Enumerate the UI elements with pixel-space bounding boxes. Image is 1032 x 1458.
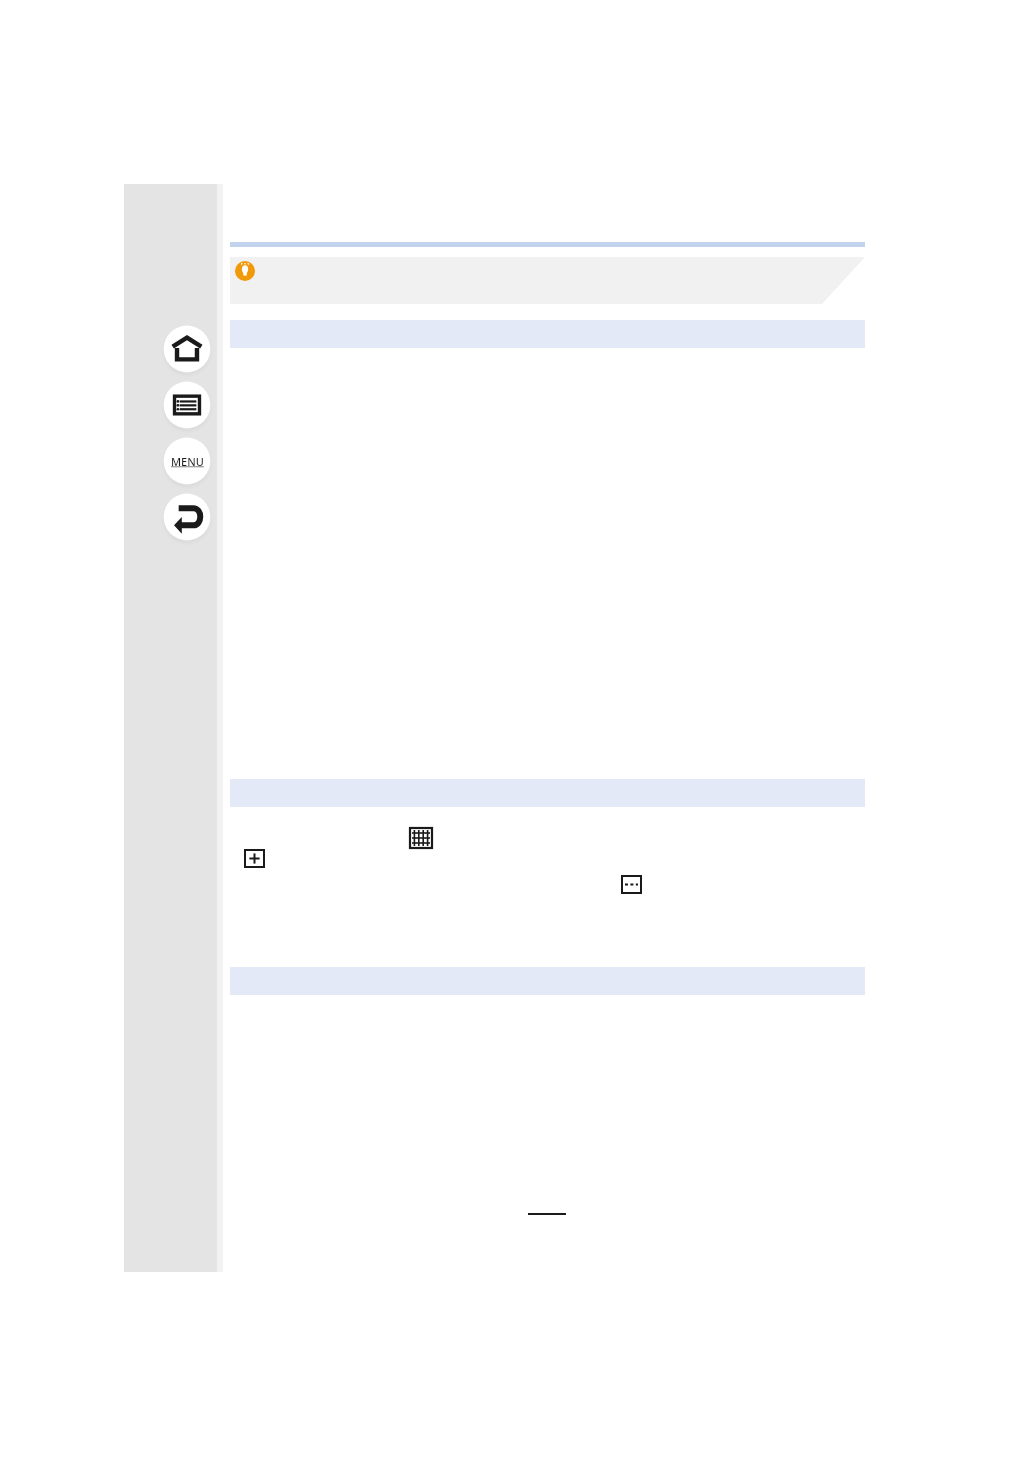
button[interactable]: Back (161, 491, 213, 543)
button[interactable]: Home (161, 323, 213, 375)
button[interactable]: List (161, 379, 213, 431)
button[interactable]: Menu (161, 435, 213, 487)
staticText: MENU (171, 454, 204, 469)
